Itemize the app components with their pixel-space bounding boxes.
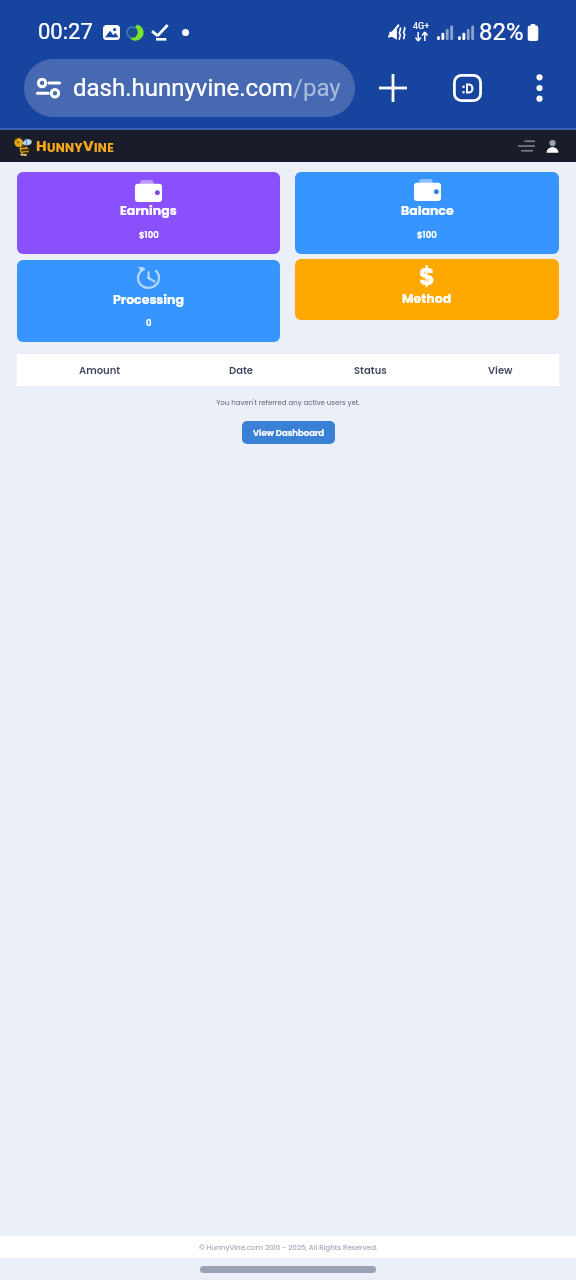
staticText: UNNY xyxy=(47,139,83,156)
button[interactable]: Processing xyxy=(17,260,280,342)
staticText: INE xyxy=(94,139,114,156)
staticText: dash.hunnyvine.com xyxy=(73,74,293,102)
button[interactable]: New tab xyxy=(369,59,417,117)
staticText: Amount xyxy=(79,363,121,377)
staticText: Earnings xyxy=(120,202,177,219)
staticText: /pay xyxy=(293,74,341,102)
staticText: Status xyxy=(354,363,387,377)
staticText: V xyxy=(83,136,94,156)
staticText: 82% xyxy=(479,18,524,46)
staticText: $100 xyxy=(417,229,437,241)
button[interactable]: More options xyxy=(515,59,563,117)
button[interactable]: Earnings xyxy=(17,172,280,254)
button[interactable]: Balance xyxy=(295,172,559,254)
staticText: You haven't referred any active users ye… xyxy=(0,398,576,408)
staticText: Balance xyxy=(401,202,454,219)
staticText: View Dashboard xyxy=(253,427,325,439)
button[interactable]: View Dashboard xyxy=(242,421,335,444)
staticText: View xyxy=(488,363,513,377)
button[interactable]: Menu xyxy=(514,134,538,158)
staticText: $100 xyxy=(139,229,159,241)
staticText: Method xyxy=(402,290,452,307)
button[interactable]: Account xyxy=(540,134,564,158)
staticText: :D xyxy=(462,81,474,96)
staticText: © HunnyVine.com 2016 - 2025, All Rights … xyxy=(199,1242,378,1252)
button[interactable]: $ xyxy=(295,259,559,320)
staticText: 00:27 xyxy=(38,19,93,45)
staticText: $ xyxy=(419,260,435,294)
staticText: H xyxy=(36,136,47,156)
staticText: Date xyxy=(229,363,253,377)
button[interactable]: dash.hunnyvine.com xyxy=(24,59,355,117)
staticText: 4G+ xyxy=(413,21,430,32)
staticText: Processing xyxy=(113,291,184,308)
staticText: 0 xyxy=(146,317,152,329)
button[interactable]: Tabs xyxy=(443,59,491,117)
